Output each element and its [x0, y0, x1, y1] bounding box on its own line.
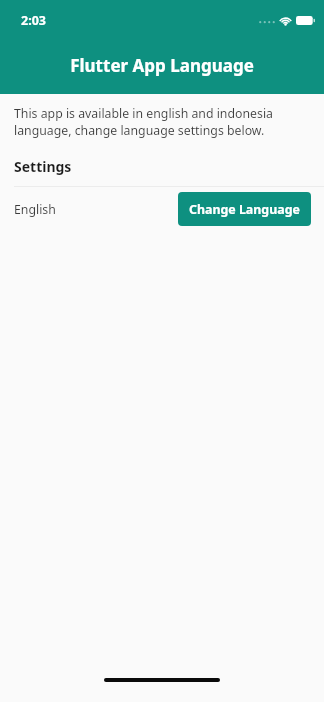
staticText: 2:03	[21, 12, 46, 29]
staticText: Flutter App Language	[70, 54, 254, 77]
staticText: English	[14, 201, 56, 218]
staticText: This app is available in english and ind…	[14, 105, 273, 138]
staticText: Settings	[14, 157, 72, 176]
staticText: Change Language	[189, 201, 300, 218]
button[interactable]: Change Language	[178, 192, 311, 226]
